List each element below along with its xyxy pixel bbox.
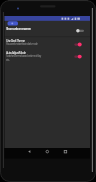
button[interactable] <box>5 50 91 64</box>
staticText: Show welcome screen <box>6 26 31 30</box>
staticText: You won't notice this in dark mode <box>6 42 38 46</box>
staticText: etc.. <box>6 58 10 62</box>
button[interactable] <box>5 38 91 50</box>
button[interactable] <box>26 149 33 156</box>
staticText: Use Dark Theme <box>6 38 25 42</box>
staticText: Switches theme based on time of day <box>6 54 41 58</box>
button[interactable] <box>5 26 91 37</box>
button[interactable] <box>44 149 51 156</box>
staticText: Auto Adjust Mode <box>6 50 26 54</box>
button[interactable] <box>62 149 69 156</box>
